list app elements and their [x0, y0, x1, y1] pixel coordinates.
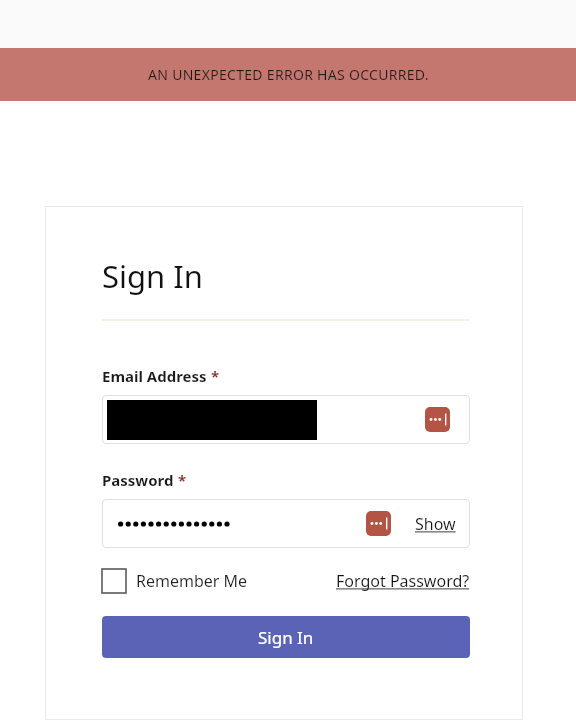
button[interactable]: Show: [415, 513, 456, 535]
staticText: AN UNEXPECTED ERROR HAS OCCURRED.: [148, 65, 429, 84]
staticText: Sign In: [258, 626, 314, 649]
staticText: Sign In: [102, 255, 203, 297]
button[interactable]: Autofill: [102, 395, 470, 444]
staticText: Show: [415, 513, 456, 535]
staticText: *: [178, 470, 187, 490]
button[interactable]: Sign In: [102, 616, 470, 658]
staticText: Forgot Password?: [336, 570, 470, 592]
button[interactable]: Remember Me: [102, 569, 248, 593]
staticText: *: [211, 366, 220, 386]
button[interactable]: Autofill: [425, 407, 450, 432]
button[interactable]: Autofill: [102, 499, 470, 548]
button[interactable]: Forgot Password?: [336, 570, 470, 592]
staticText: Remember Me: [136, 570, 248, 592]
button[interactable]: Autofill: [366, 511, 391, 536]
staticText: Password: [102, 470, 174, 490]
staticText: Email Address: [102, 366, 207, 386]
